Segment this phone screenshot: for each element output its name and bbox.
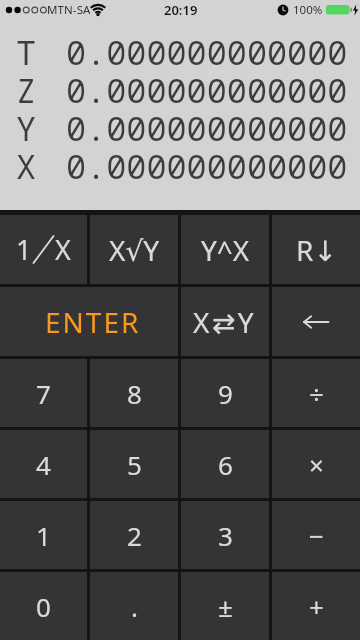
staticText: 0.000000000000 [66,29,348,67]
staticText: X⇄Y [193,303,257,341]
button[interactable]: 3 [181,501,269,569]
staticText: X [16,143,37,181]
staticText: 0.000000000000 [66,105,348,143]
button[interactable]: ± [181,572,269,640]
staticText: MTN-SA [47,2,91,18]
staticText: 1 [36,518,51,553]
button[interactable]: R↓ [272,215,360,284]
button[interactable] [272,287,360,356]
staticText: X [55,231,71,268]
staticText: 1 [16,231,32,268]
staticText: T [16,29,37,67]
button[interactable]: 0 [0,572,87,640]
staticText: ENTER [45,303,141,341]
button[interactable]: X√Y [90,215,178,284]
button[interactable]: × [272,430,360,498]
button[interactable]: 4 [0,430,87,498]
staticText: × [309,447,324,482]
button[interactable]: 2 [90,501,178,569]
staticText: 0.000000000000 [66,143,348,181]
button[interactable]: ÷ [272,359,360,427]
staticText: 5 [127,447,142,482]
button[interactable]: 8 [90,359,178,427]
button[interactable]: X⇄Y [181,287,269,356]
staticText: 7 [36,376,51,411]
staticText: 0.000000000000 [66,67,348,105]
button[interactable]: 1 [0,215,87,284]
button[interactable]: + [272,572,360,640]
staticText: + [309,589,324,624]
button[interactable]: 7 [0,359,87,427]
button[interactable]: 6 [181,430,269,498]
staticText: ÷ [309,376,324,411]
staticText: . [131,589,138,624]
button[interactable]: − [272,501,360,569]
staticText: X√Y [109,231,160,269]
staticText: Z [16,67,37,105]
staticText: 8 [127,376,142,411]
staticText: 20:19 [164,1,198,19]
staticText: Y [16,105,37,143]
button[interactable]: ENTER [0,287,178,356]
button[interactable]: 5 [90,430,178,498]
staticText: 4 [36,447,51,482]
staticText: 3 [218,518,233,553]
button[interactable]: . [90,572,178,640]
staticText: R↓ [296,231,337,269]
staticText: 100% [293,2,323,18]
staticText: Y^X [201,231,250,269]
staticText: − [309,518,324,553]
staticText: 0 [36,589,51,624]
button[interactable]: 9 [181,359,269,427]
button[interactable]: 1 [0,501,87,569]
staticText: 6 [218,447,233,482]
staticText: 9 [218,376,233,411]
button[interactable]: Y^X [181,215,269,284]
staticText: 2 [127,518,142,553]
staticText: ± [218,589,233,624]
